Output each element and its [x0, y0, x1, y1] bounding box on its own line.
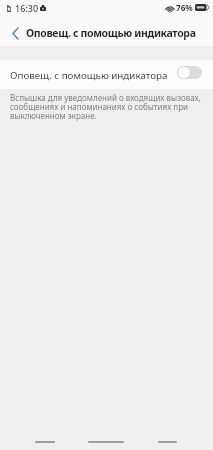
button[interactable]: Back: [35, 441, 55, 443]
staticText: 76%: [176, 2, 193, 13]
staticText: Оповещ. с помощью индикатора: [10, 69, 168, 82]
button[interactable]: Home: [88, 441, 124, 443]
staticText: Оповещ. с помощью индикатора: [26, 26, 196, 40]
button[interactable]: Back: [2, 21, 27, 46]
button[interactable]: Оповещ. с помощью индикатора: [0, 60, 213, 89]
staticText: 16:30: [15, 2, 39, 14]
button[interactable]: Recents: [158, 441, 177, 443]
staticText: Вспышка для уведомлений о входящих вызов…: [10, 92, 203, 122]
